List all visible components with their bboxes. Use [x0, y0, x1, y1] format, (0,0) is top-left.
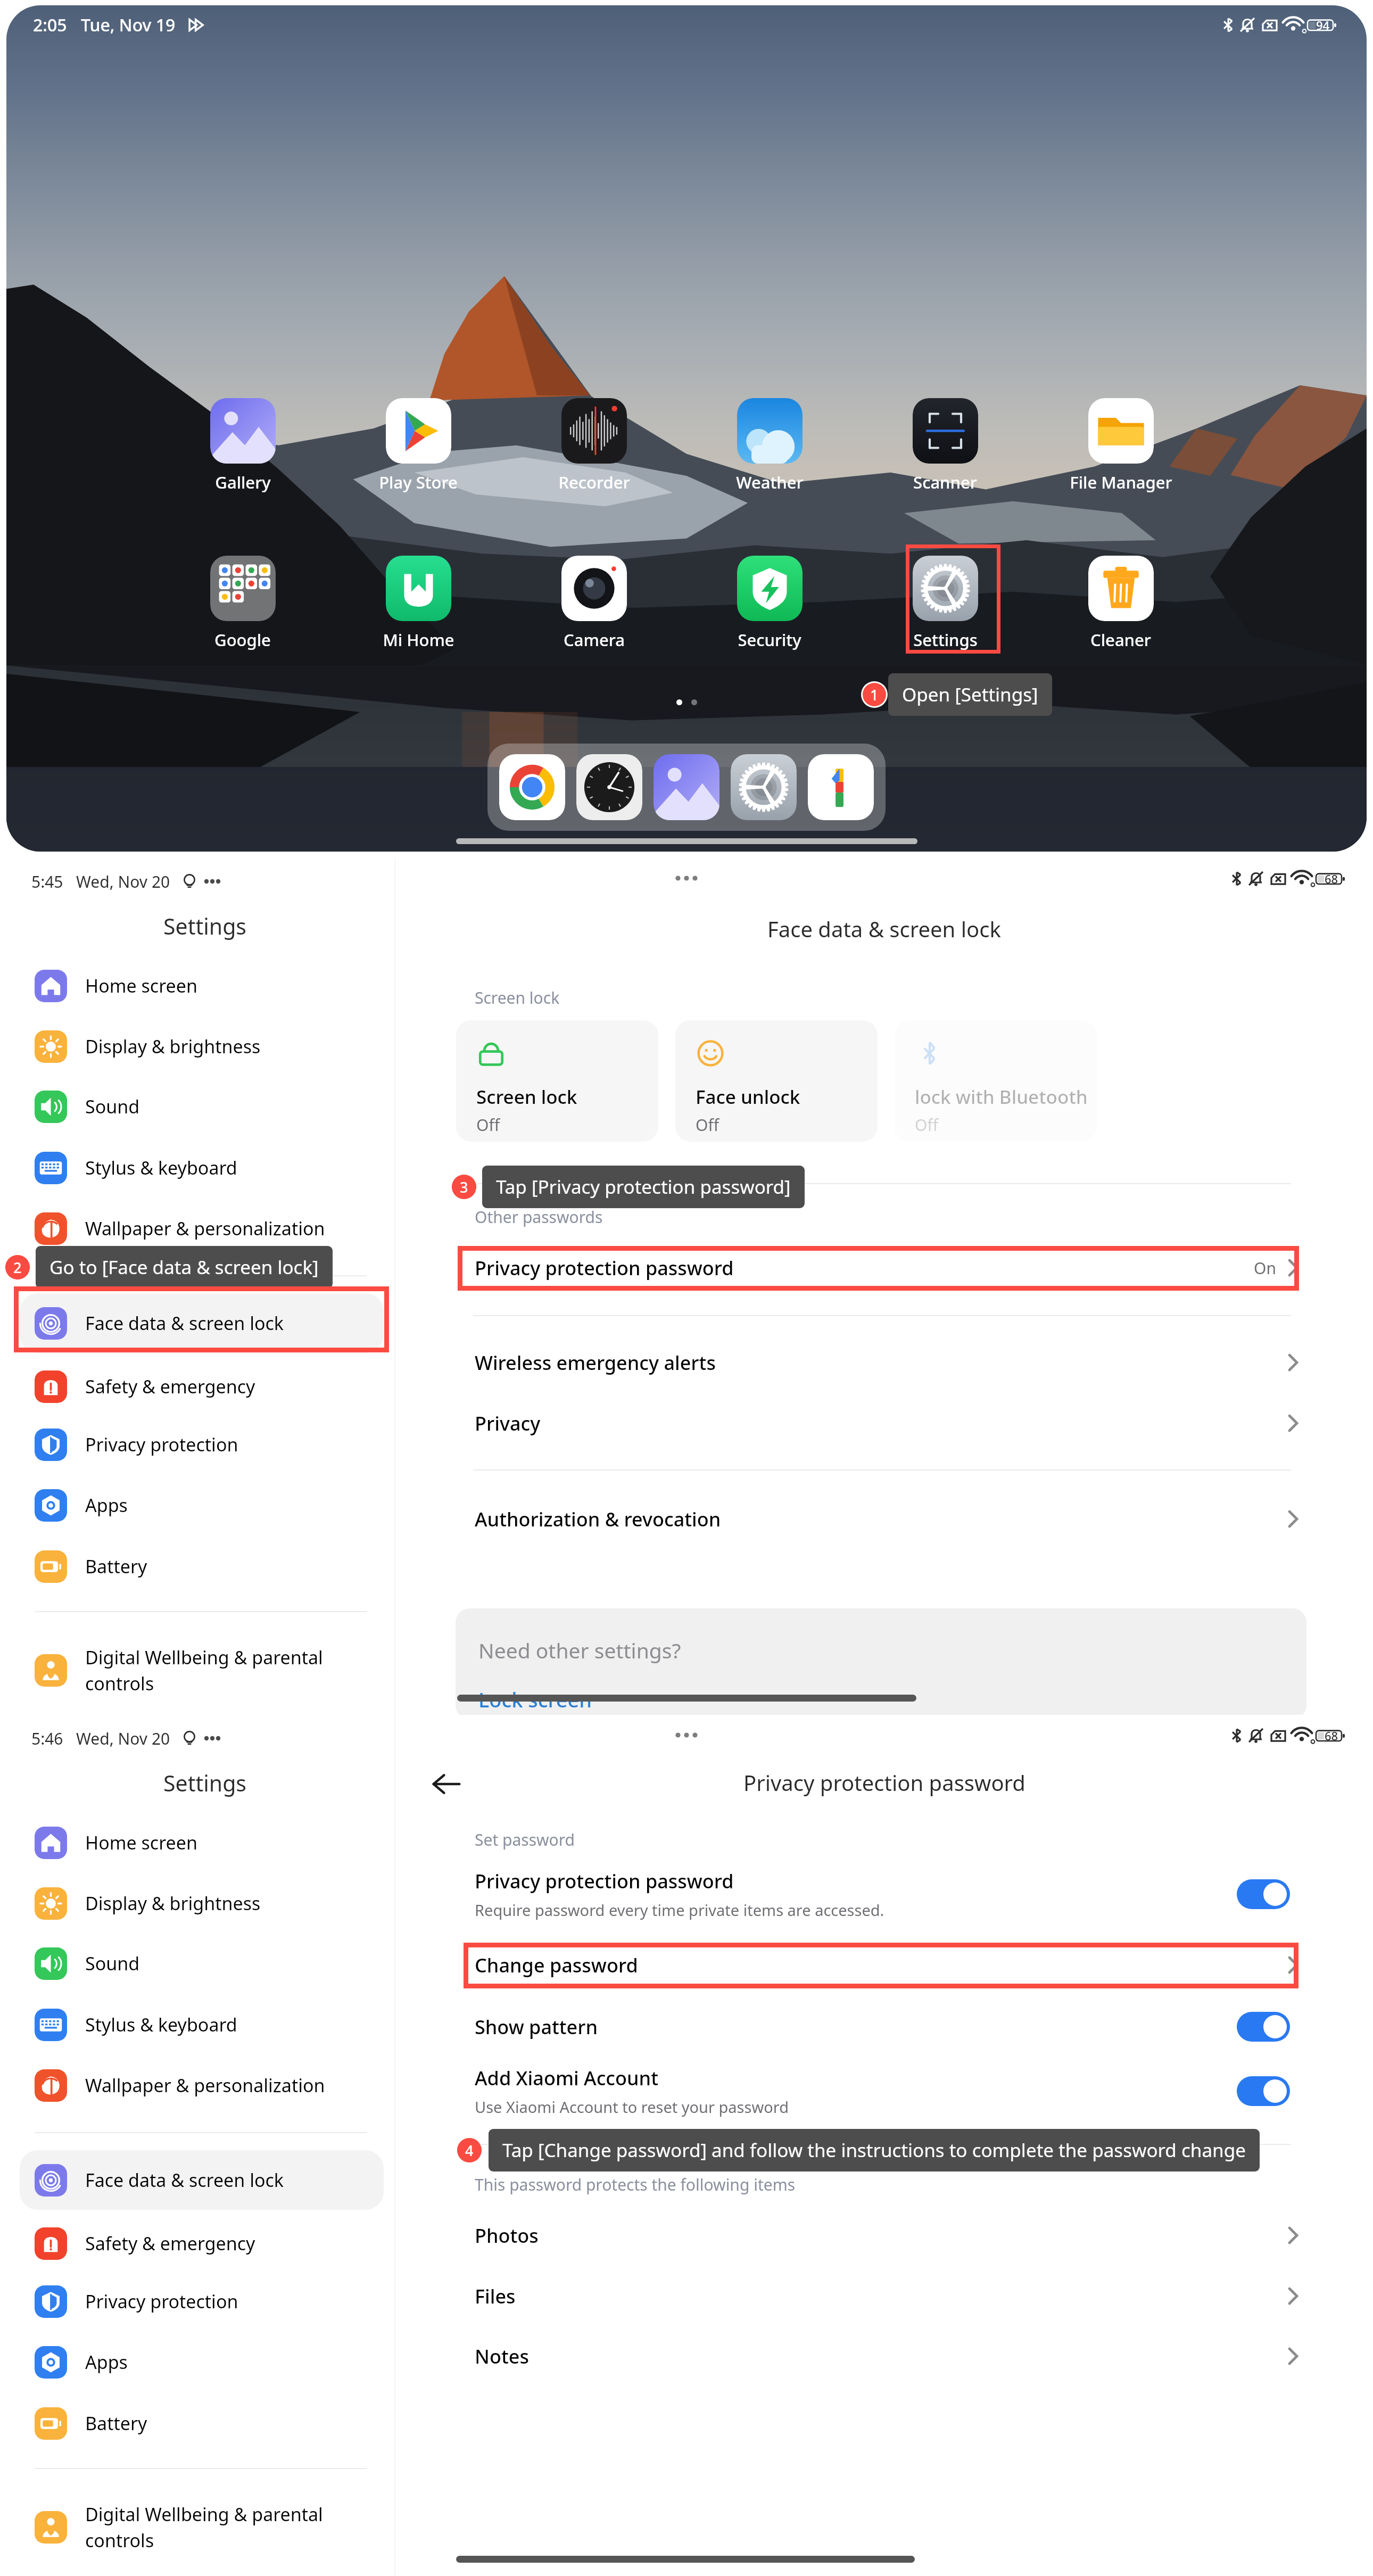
button[interactable]: Chrome — [499, 754, 565, 820]
staticText: On — [1254, 1257, 1276, 1279]
button[interactable]: Battery — [20, 1537, 384, 1596]
button[interactable]: Gallery — [654, 754, 719, 820]
button[interactable]: Face data & screen lock — [20, 1293, 384, 1353]
button[interactable]: Scanner — [913, 398, 978, 464]
staticText: Home screen — [85, 973, 197, 998]
staticText: Privacy protection password — [743, 1768, 1025, 1797]
staticText: 5:46 — [31, 1728, 63, 1749]
button[interactable]: Apps — [20, 1475, 384, 1535]
button[interactable]: Display & brightness — [20, 1873, 384, 1933]
button[interactable]: Change password — [395, 1935, 1373, 1995]
staticText: Battery — [85, 1554, 147, 1579]
staticText: Off — [476, 1114, 500, 1136]
staticText: Face unlock — [696, 1084, 800, 1110]
button[interactable]: Home screen — [20, 1813, 384, 1872]
button[interactable]: Gallery — [210, 398, 276, 464]
button[interactable]: Security — [737, 556, 803, 621]
button[interactable]: Cleaner — [1088, 556, 1154, 621]
staticText: Sound — [85, 1951, 140, 1976]
staticText: Safety & emergency — [85, 2231, 255, 2256]
staticText: Wireless emergency alerts — [475, 1350, 1289, 1376]
staticText: Mi Home — [383, 629, 454, 651]
button[interactable]: Settings — [731, 754, 797, 820]
staticText: Settings — [913, 629, 978, 651]
staticText: 2:05 — [33, 13, 67, 37]
staticText: Off — [915, 1114, 939, 1136]
button[interactable]: Sound — [20, 1934, 384, 1993]
staticText: Stylus & keyboard — [85, 1155, 237, 1180]
button[interactable]: Face data & screen lock — [20, 2150, 384, 2210]
button[interactable]: Wallpaper & personalization — [20, 1199, 384, 1258]
staticText: Tue, Nov 19 — [81, 13, 176, 37]
button[interactable]: Recorder — [561, 398, 627, 464]
button[interactable]: Safety & emergency — [20, 2214, 384, 2273]
staticText: Apps — [85, 2350, 128, 2374]
staticText: Use Xiaomi Account to reset your passwor… — [475, 2096, 789, 2117]
button[interactable]: Apps — [20, 2332, 384, 2392]
staticText: Screen lock — [475, 987, 560, 1009]
button[interactable]: Weather — [737, 398, 803, 464]
button[interactable]: Add Xiaomi Account — [395, 2057, 1373, 2126]
staticText: Weather — [736, 471, 804, 493]
staticText: Wed, Nov 20 — [76, 1728, 170, 1749]
button[interactable]: Photos — [395, 2206, 1373, 2265]
button[interactable]: Clock — [576, 754, 642, 820]
button[interactable]: Notes — [395, 2326, 1373, 2386]
staticText: Recorder — [558, 471, 630, 493]
staticText: Display & brightness — [85, 1891, 261, 1916]
button[interactable]: Back — [426, 1764, 467, 1804]
button[interactable]: Display & brightness — [20, 1017, 384, 1076]
staticText: Safety & emergency — [85, 1374, 255, 1399]
button[interactable]: Camera — [561, 556, 627, 621]
staticText: Sound — [85, 1094, 140, 1119]
staticText: 5:45 — [31, 871, 63, 893]
button[interactable]: Stylus & keyboard — [20, 1995, 384, 2054]
button[interactable]: Digital Wellbeing & parental controls — [20, 2497, 384, 2557]
button[interactable]: Privacy protection — [20, 2272, 384, 2331]
button[interactable]: File Manager — [1088, 398, 1154, 464]
staticText: Privacy protection password — [475, 1868, 734, 1894]
staticText: 68 — [1325, 1728, 1338, 1744]
button[interactable]: Play Store — [386, 398, 451, 464]
button[interactable]: Files — [395, 2266, 1373, 2326]
button[interactable]: Digital Wellbeing & parental controls — [20, 1640, 384, 1700]
staticText: Privacy protection — [85, 2289, 238, 2314]
staticText: Face data & screen lock — [85, 1311, 284, 1335]
button[interactable]: Face unlock — [675, 1020, 878, 1142]
staticText: Home screen — [85, 1830, 197, 1855]
button[interactable]: Screen lock — [456, 1020, 658, 1142]
staticText: Face data & screen lock — [85, 2168, 284, 2192]
staticText: Gallery — [215, 471, 271, 493]
button[interactable]: Settings — [913, 556, 978, 621]
staticText: Open [Settings] — [902, 682, 1038, 707]
button[interactable]: Wireless emergency alerts — [395, 1333, 1373, 1392]
staticText: Scanner — [913, 471, 977, 493]
button[interactable]: Stylus & keyboard — [20, 1138, 384, 1198]
staticText: Apps — [85, 1493, 128, 1517]
button[interactable]: Battery — [20, 2393, 384, 2453]
button[interactable]: Google — [210, 556, 276, 621]
button[interactable]: Mi Home — [386, 556, 451, 621]
staticText: Digital Wellbeing & parental controls — [85, 2502, 323, 2553]
staticText: Files — [475, 2283, 1289, 2309]
staticText: This password protects the following ite… — [475, 2174, 796, 2195]
button[interactable]: Sound — [20, 1077, 384, 1136]
button[interactable]: lock with Bluetooth — [895, 1020, 1097, 1142]
staticText: Require password every time private item… — [475, 1900, 884, 1920]
staticText: Tap [Privacy protection password] — [496, 1174, 791, 1200]
button[interactable]: Privacy — [395, 1393, 1373, 1453]
button[interactable]: Google One — [808, 754, 874, 820]
button[interactable]: Wallpaper & personalization — [20, 2055, 384, 2115]
button[interactable]: Show pattern — [395, 2000, 1373, 2053]
staticText: Play Store — [379, 471, 458, 493]
staticText: Digital Wellbeing & parental controls — [85, 1645, 323, 1696]
button[interactable]: Safety & emergency — [20, 1357, 384, 1416]
button[interactable]: Privacy protection password — [395, 1238, 1373, 1298]
button[interactable]: Privacy protection password — [395, 1860, 1373, 1929]
button[interactable]: Privacy protection — [20, 1415, 384, 1474]
button[interactable]: Authorization & revocation — [395, 1489, 1373, 1549]
staticText: Show pattern — [475, 2014, 598, 2040]
staticText: Camera — [564, 629, 625, 651]
staticText: Other passwords — [475, 1206, 603, 1228]
button[interactable]: Home screen — [20, 956, 384, 1015]
